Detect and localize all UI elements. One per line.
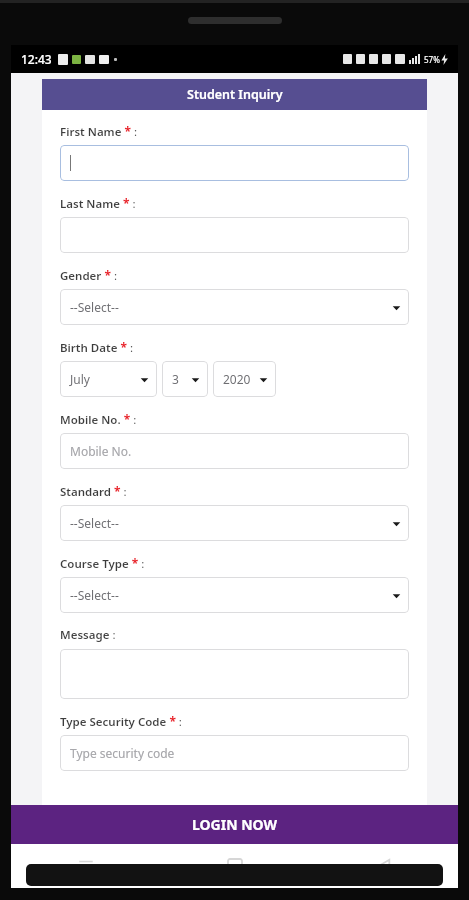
- staticText: Type security code: [70, 745, 175, 761]
- staticText: 2020: [223, 371, 255, 387]
- button[interactable]: --Select--: [60, 505, 409, 541]
- staticText: --Select--: [70, 299, 388, 315]
- button[interactable]: --Select--: [60, 577, 409, 613]
- staticText: Mobile No. * :: [60, 411, 137, 427]
- staticText: Last Name * :: [60, 195, 136, 211]
- staticText: First Name * :: [60, 123, 138, 139]
- staticText: 3: [172, 371, 187, 387]
- staticText: LOGIN NOW: [192, 815, 278, 834]
- button[interactable]: [60, 217, 409, 253]
- button[interactable]: Recent apps: [11, 844, 160, 888]
- staticText: July: [70, 371, 136, 387]
- button[interactable]: Back: [309, 844, 458, 888]
- staticText: --Select--: [70, 515, 388, 531]
- button[interactable]: July: [60, 361, 157, 397]
- button[interactable]: [60, 145, 409, 181]
- staticText: 12:43: [21, 51, 52, 67]
- button[interactable]: 2020: [213, 361, 276, 397]
- button[interactable]: Type security code: [60, 735, 409, 771]
- button[interactable]: [60, 649, 409, 699]
- button[interactable]: Student Inquiry: [42, 79, 427, 110]
- staticText: Gender * :: [60, 267, 118, 283]
- button[interactable]: Home: [160, 844, 309, 888]
- staticText: Type Security Code * :: [60, 713, 182, 729]
- button[interactable]: LOGIN NOW: [11, 805, 458, 844]
- button[interactable]: Mobile No.: [60, 433, 409, 469]
- staticText: Course Type * :: [60, 555, 145, 571]
- staticText: 57%: [424, 54, 440, 65]
- staticText: Student Inquiry: [187, 86, 283, 103]
- staticText: --Select--: [70, 587, 388, 603]
- staticText: Message :: [60, 627, 116, 643]
- button[interactable]: 3: [162, 361, 208, 397]
- staticText: Mobile No.: [70, 443, 132, 459]
- staticText: Birth Date * :: [60, 339, 134, 355]
- staticText: Standard * :: [60, 483, 127, 499]
- button[interactable]: --Select--: [60, 289, 409, 325]
